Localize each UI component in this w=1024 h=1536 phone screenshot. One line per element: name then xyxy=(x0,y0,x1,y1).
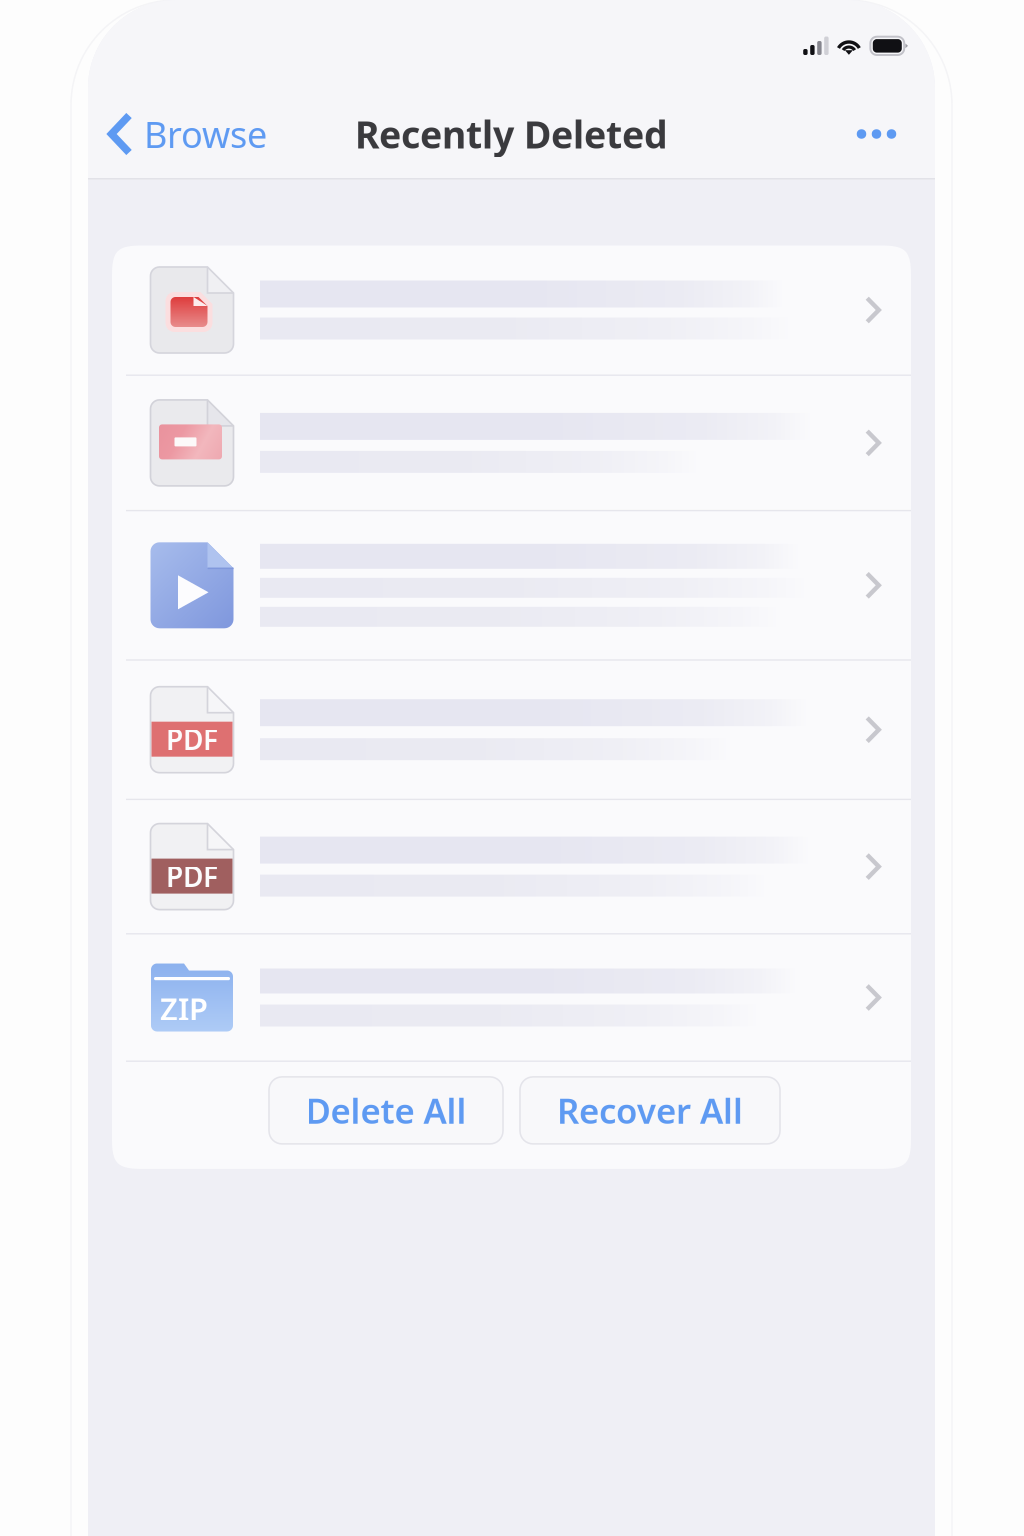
staticText: PDF xyxy=(166,721,218,758)
button[interactable]: PDF xyxy=(112,661,911,799)
button[interactable]: ZIP xyxy=(112,934,911,1060)
button[interactable]: PDF xyxy=(112,800,911,933)
button[interactable]: Browse xyxy=(88,90,281,178)
staticText: PDF xyxy=(166,857,218,895)
staticText: Recently Deleted xyxy=(355,109,668,159)
staticText: Recover All xyxy=(557,1087,743,1133)
button[interactable] xyxy=(112,376,911,510)
button[interactable]: Delete All xyxy=(269,1077,503,1144)
staticText: Delete All xyxy=(305,1087,466,1133)
button[interactable]: Recover All xyxy=(520,1077,780,1144)
staticText: Browse xyxy=(144,110,267,158)
button[interactable]: More options xyxy=(833,90,935,178)
button[interactable] xyxy=(112,511,911,659)
button[interactable] xyxy=(112,245,911,374)
staticText: ZIP xyxy=(160,988,208,1029)
